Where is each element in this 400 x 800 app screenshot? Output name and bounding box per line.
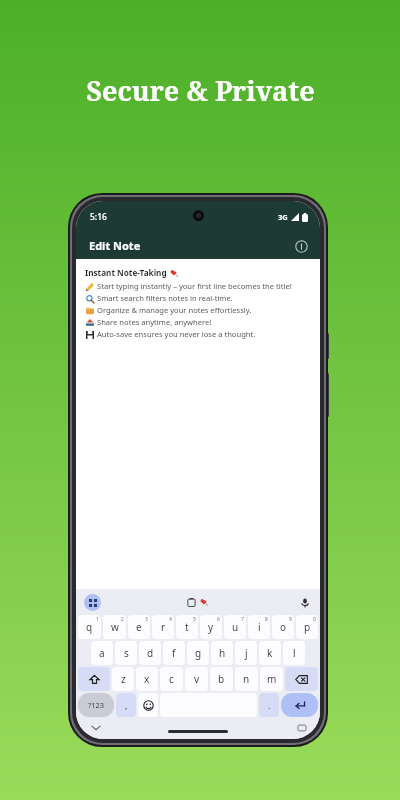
staticText: b bbox=[218, 672, 225, 686]
button[interactable]: k bbox=[259, 641, 281, 665]
button[interactable]: Shift bbox=[78, 667, 110, 691]
button[interactable]: v bbox=[185, 667, 208, 691]
staticText: i bbox=[258, 620, 261, 634]
button[interactable]: Instant Note-Taking bbox=[85, 267, 311, 589]
staticText: 4 bbox=[169, 616, 172, 623]
staticText: 1 bbox=[96, 616, 99, 623]
staticText: k bbox=[267, 646, 273, 660]
button[interactable]: m bbox=[260, 667, 283, 691]
staticText: w bbox=[111, 620, 119, 634]
staticText: 6 bbox=[217, 616, 220, 623]
button[interactable]: e bbox=[128, 615, 150, 639]
staticText: Edit Note bbox=[89, 238, 141, 253]
button[interactable]: s bbox=[115, 641, 137, 665]
staticText: a bbox=[99, 646, 105, 660]
button[interactable]: f bbox=[163, 641, 185, 665]
button[interactable]: c bbox=[160, 667, 183, 691]
button[interactable]: r bbox=[152, 615, 174, 639]
button[interactable]: t bbox=[176, 615, 198, 639]
staticText: Start typing instantly – your first line… bbox=[97, 281, 292, 291]
button[interactable]: . bbox=[259, 693, 279, 717]
button[interactable]: Keyboard menu bbox=[84, 594, 101, 611]
staticText: 5 bbox=[193, 616, 196, 623]
staticText: Secure & Private bbox=[86, 72, 315, 109]
staticText: o bbox=[280, 620, 287, 634]
staticText: 8 bbox=[265, 616, 268, 623]
button[interactable]: , bbox=[116, 693, 136, 717]
button[interactable]: z bbox=[112, 667, 134, 691]
staticText: 3G bbox=[278, 212, 288, 222]
staticText: l bbox=[293, 646, 296, 660]
button[interactable]: g bbox=[187, 641, 209, 665]
button[interactable]: q bbox=[78, 615, 101, 639]
other: Change keyboard bbox=[298, 724, 306, 732]
button[interactable]: Clipboard bbox=[187, 598, 196, 607]
button[interactable]: y bbox=[200, 615, 222, 639]
button[interactable]: p bbox=[296, 615, 318, 639]
staticText: . bbox=[268, 699, 271, 711]
staticText: e bbox=[136, 620, 142, 634]
staticText: c bbox=[169, 672, 174, 686]
button[interactable]: b bbox=[210, 667, 233, 691]
button[interactable]: Voice input bbox=[298, 596, 311, 609]
staticText: s bbox=[124, 646, 129, 660]
button[interactable]: d bbox=[139, 641, 161, 665]
button[interactable]: o bbox=[272, 615, 294, 639]
button[interactable]: w bbox=[103, 615, 126, 639]
button[interactable]: x bbox=[136, 667, 158, 691]
staticText: Organize & manage your notes effortlessl… bbox=[97, 305, 252, 315]
staticText: n bbox=[243, 672, 250, 686]
button[interactable]: Backspace bbox=[285, 667, 318, 691]
staticText: 5:16 bbox=[90, 211, 107, 223]
staticText: z bbox=[121, 672, 126, 686]
staticText: p bbox=[304, 620, 311, 634]
staticText: 2 bbox=[121, 616, 124, 623]
staticText: t bbox=[185, 620, 189, 634]
staticText: ?123 bbox=[88, 700, 105, 710]
button[interactable]: Enter bbox=[281, 693, 318, 717]
button[interactable]: ?123 bbox=[78, 693, 114, 717]
staticText: 7 bbox=[241, 616, 244, 623]
staticText: r bbox=[161, 620, 166, 634]
staticText: 0 bbox=[313, 616, 316, 623]
button[interactable]: u bbox=[224, 615, 246, 639]
button[interactable]: h bbox=[211, 641, 233, 665]
staticText: v bbox=[194, 672, 200, 686]
staticText: Smart search filters notes in real-time. bbox=[97, 293, 233, 303]
button[interactable]: n bbox=[235, 667, 258, 691]
other: Hide keyboard bbox=[92, 724, 100, 732]
staticText: 3 bbox=[145, 616, 148, 623]
staticText: , bbox=[125, 699, 128, 711]
button[interactable]: l bbox=[283, 641, 305, 665]
staticText: f bbox=[172, 646, 176, 660]
staticText: Auto-save ensures you never lose a thoug… bbox=[97, 329, 256, 339]
staticText: u bbox=[232, 620, 239, 634]
staticText: Instant Note-Taking bbox=[85, 267, 167, 278]
staticText: Share notes anytime, anywhere! bbox=[97, 317, 212, 327]
staticText: 9 bbox=[289, 616, 292, 623]
staticText: x bbox=[144, 672, 150, 686]
staticText: h bbox=[219, 646, 226, 660]
button[interactable]: j bbox=[235, 641, 257, 665]
staticText: j bbox=[245, 646, 248, 660]
staticText: d bbox=[147, 646, 154, 660]
staticText: y bbox=[208, 620, 214, 634]
button[interactable]: Emoji bbox=[138, 693, 158, 717]
staticText: g bbox=[195, 646, 202, 660]
staticText: m bbox=[267, 672, 277, 686]
button[interactable]: Info bbox=[293, 238, 309, 254]
button[interactable]: i bbox=[248, 615, 270, 639]
button[interactable]: a bbox=[91, 641, 113, 665]
staticText: q bbox=[86, 620, 93, 634]
button[interactable]: Edit Note bbox=[76, 232, 320, 259]
